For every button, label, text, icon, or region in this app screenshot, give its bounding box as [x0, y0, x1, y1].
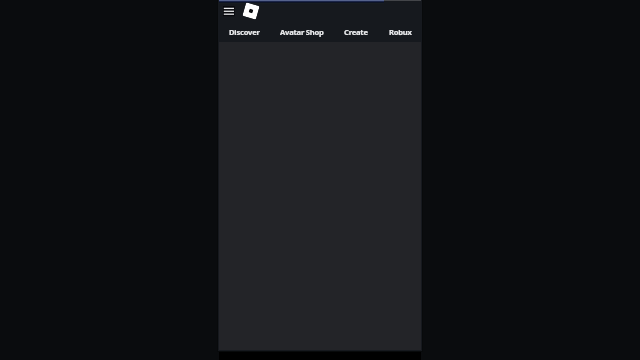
- button[interactable]: Discover: [225, 25, 264, 39]
- staticText: Discover: [229, 27, 260, 37]
- staticText: Robux: [389, 27, 412, 37]
- button[interactable]: Robux: [385, 25, 416, 39]
- button[interactable]: Create: [340, 25, 372, 39]
- button[interactable]: Avatar Shop: [276, 25, 328, 39]
- button[interactable]: Roblox home: [240, 0, 262, 22]
- button[interactable]: Open navigation menu: [223, 5, 236, 17]
- staticText: Create: [344, 27, 368, 37]
- staticText: Avatar Shop: [280, 27, 324, 37]
